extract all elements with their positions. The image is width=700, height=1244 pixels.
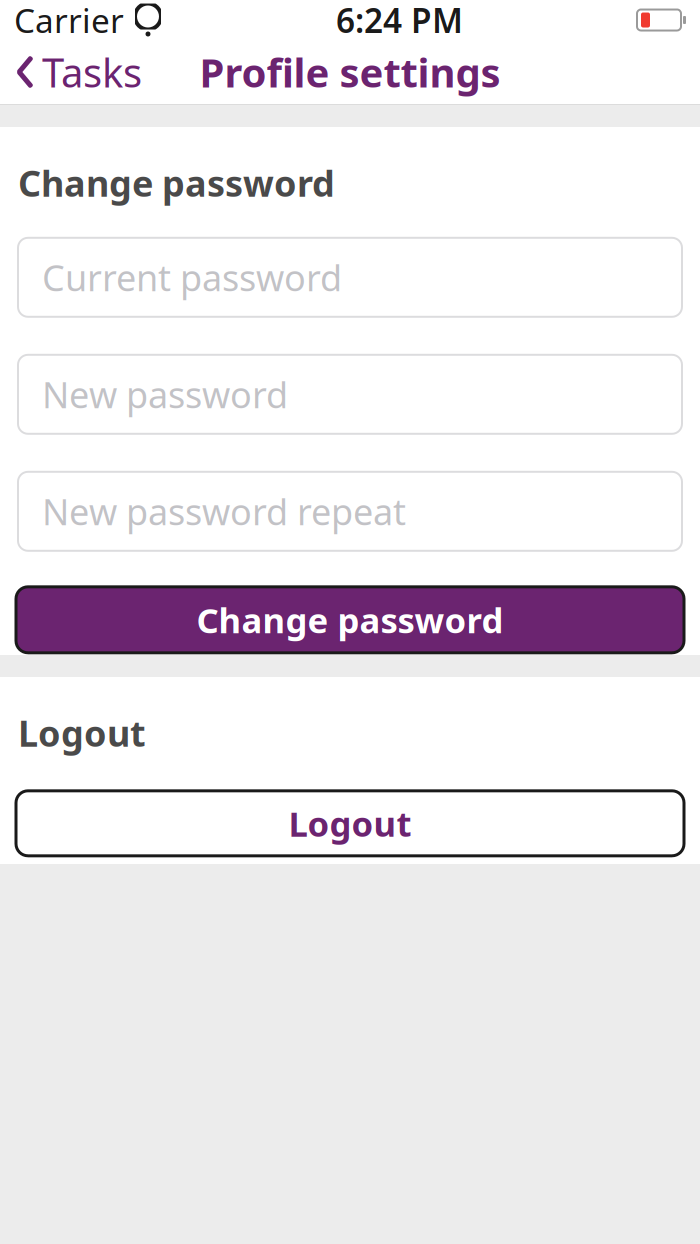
- staticText: Logout: [288, 800, 411, 846]
- staticText: New password: [42, 370, 288, 418]
- staticText: Profile settings: [199, 45, 500, 98]
- staticText: Tasks: [42, 45, 142, 98]
- staticText: Carrier: [14, 0, 124, 42]
- staticText: Current password: [42, 253, 342, 301]
- staticText: Change password: [196, 597, 503, 643]
- staticText: New password repeat: [42, 487, 406, 535]
- button[interactable]: Change password: [0, 587, 700, 653]
- button[interactable]: Logout: [0, 791, 700, 856]
- button[interactable]: Tasks: [0, 37, 158, 106]
- staticText: Logout: [18, 709, 146, 757]
- staticText: 6:24 PM: [336, 0, 463, 42]
- staticText: Change password: [18, 159, 335, 207]
